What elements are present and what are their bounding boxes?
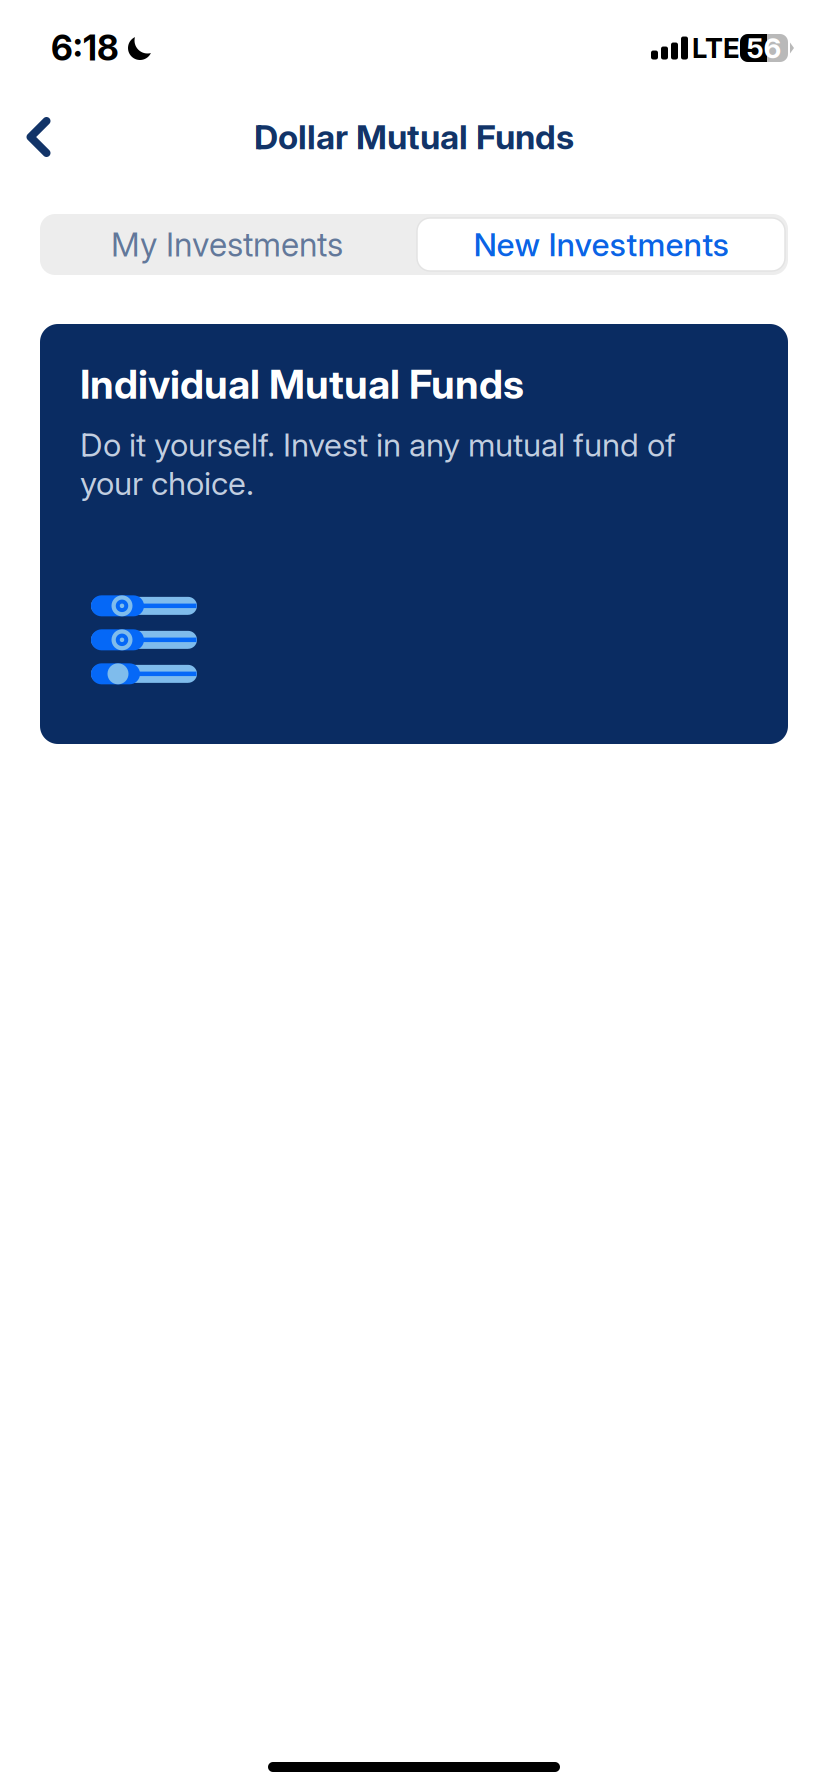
button[interactable]: My Investments <box>40 214 414 275</box>
staticText: Do it yourself. Invest in any mutual fun… <box>80 425 676 503</box>
staticText: Individual Mutual Funds <box>80 360 524 408</box>
staticText: LTE <box>692 31 740 65</box>
button[interactable]: Back <box>0 99 81 175</box>
staticText: New Investments <box>473 225 728 264</box>
staticText: 56 <box>746 31 781 65</box>
staticText: Dollar Mutual Funds <box>254 116 574 157</box>
button[interactable]: Individual Mutual Funds <box>40 324 788 744</box>
button[interactable]: New Investments <box>414 214 788 275</box>
staticText: 6:18 <box>51 27 119 69</box>
staticText: My Investments <box>111 225 343 264</box>
